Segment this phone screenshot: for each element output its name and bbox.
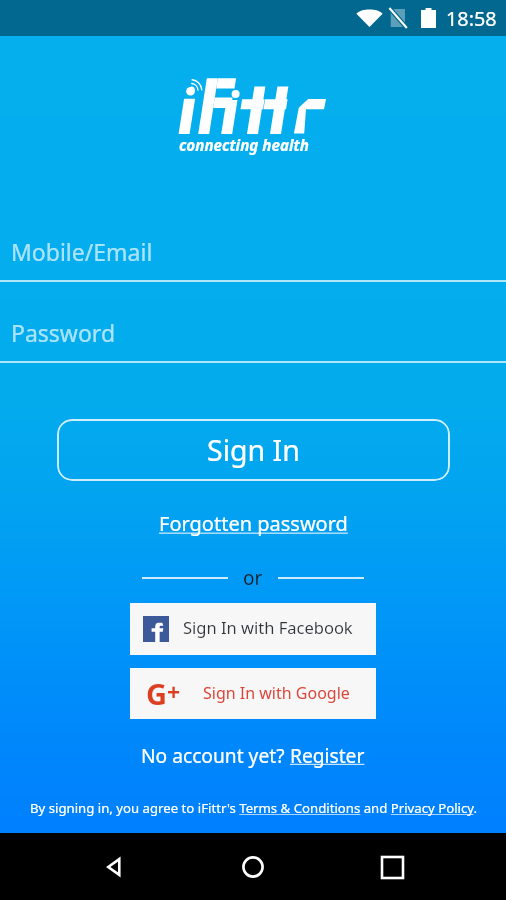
- staticText: Sign In with Facebook: [183, 616, 353, 638]
- button[interactable]: [0, 301, 506, 363]
- button[interactable]: Home: [228, 842, 278, 892]
- button[interactable]: [0, 220, 506, 282]
- staticText: Sign In: [207, 431, 300, 470]
- staticText: or: [243, 565, 263, 591]
- button[interactable]: Forgotten password: [155, 508, 352, 539]
- button[interactable]: Recent apps: [367, 842, 417, 892]
- staticText: +: [167, 676, 181, 707]
- staticText: Sign In with Google: [203, 682, 350, 704]
- staticText: No account yet?: [141, 742, 290, 768]
- staticText: connecting health: [179, 135, 309, 156]
- button[interactable]: Sign In: [57, 419, 450, 481]
- staticText: Mobile/Email: [11, 236, 153, 267]
- staticText: 18:58: [446, 5, 497, 32]
- button[interactable]: Back: [89, 842, 139, 892]
- button[interactable]: Register: [290, 742, 365, 768]
- button[interactable]: Sign In with Facebook: [130, 603, 376, 655]
- staticText: G: [146, 674, 167, 713]
- staticText: Password: [11, 317, 116, 348]
- button[interactable]: By signing in, you agree to iFittr's Ter…: [30, 799, 477, 817]
- button[interactable]: G: [130, 668, 376, 719]
